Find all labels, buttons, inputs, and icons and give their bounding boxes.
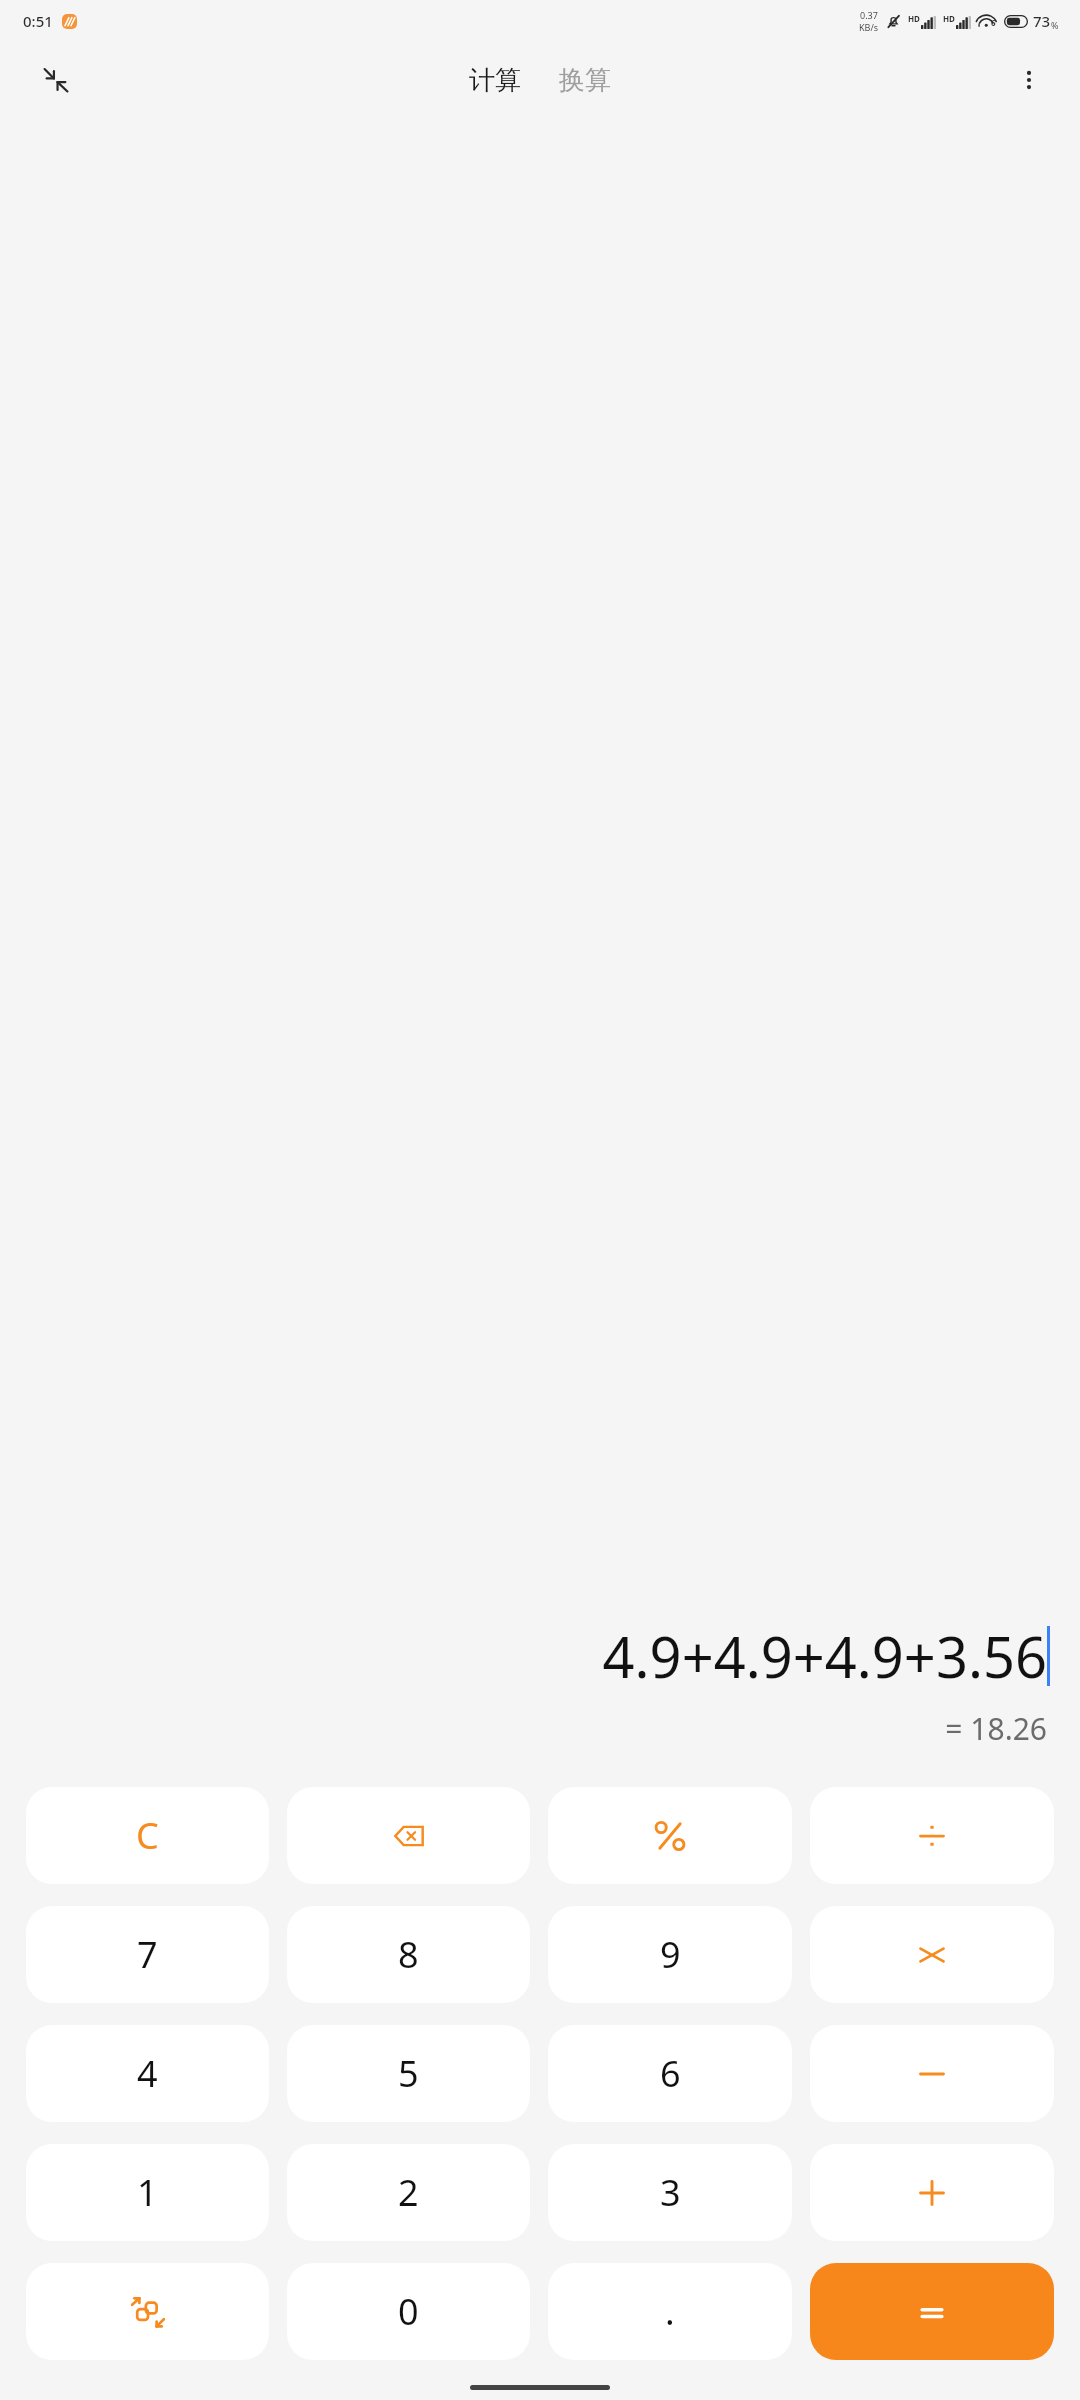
button[interactable]: 4 bbox=[26, 2025, 269, 2122]
button[interactable]: Backspace bbox=[287, 1787, 530, 1884]
button[interactable]: Clear bbox=[26, 1787, 269, 1884]
staticText: 73 bbox=[1033, 11, 1051, 31]
button[interactable]: More options bbox=[1004, 55, 1054, 105]
staticText: % bbox=[1051, 19, 1059, 31]
button[interactable]: 2 bbox=[287, 2144, 530, 2241]
button[interactable]: Divide bbox=[810, 1787, 1054, 1884]
staticText: 换算 bbox=[559, 64, 611, 97]
staticText: KB/s bbox=[859, 21, 879, 33]
staticText: 0:51 bbox=[23, 11, 53, 31]
staticText: 5 bbox=[398, 2049, 419, 2098]
staticText: 8 bbox=[398, 1930, 419, 1979]
staticText: 0.37 bbox=[860, 9, 878, 21]
staticText: 1 bbox=[137, 2168, 158, 2217]
staticText: C bbox=[136, 1811, 159, 1860]
button[interactable]: . bbox=[548, 2263, 792, 2360]
button[interactable]: 计算 bbox=[461, 60, 529, 101]
staticText: 4.9+4.9+4.9+3.56 bbox=[602, 1618, 1047, 1694]
button[interactable]: 9 bbox=[548, 1906, 792, 2003]
staticText: 6 bbox=[991, 17, 996, 28]
staticText: HD bbox=[943, 13, 955, 24]
button[interactable]: Minus bbox=[810, 2025, 1054, 2122]
button[interactable]: 3 bbox=[548, 2144, 792, 2241]
button[interactable]: Percent bbox=[548, 1787, 792, 1884]
staticText: 0 bbox=[398, 2287, 419, 2336]
staticText: 7 bbox=[137, 1930, 158, 1979]
button[interactable]: Plus bbox=[810, 2144, 1054, 2241]
staticText: = 18.26 bbox=[30, 1708, 1047, 1749]
button[interactable]: 换算 bbox=[551, 60, 619, 101]
button[interactable]: Multiply bbox=[810, 1906, 1054, 2003]
button[interactable]: Equals bbox=[810, 2263, 1054, 2360]
button[interactable]: 6 bbox=[548, 2025, 792, 2122]
button[interactable]: 0 bbox=[287, 2263, 530, 2360]
staticText: 3 bbox=[660, 2168, 681, 2217]
button[interactable]: 8 bbox=[287, 1906, 530, 2003]
staticText: 4 bbox=[137, 2049, 158, 2098]
button[interactable]: Scientific bbox=[26, 2263, 269, 2360]
staticText: 6 bbox=[660, 2049, 681, 2098]
staticText: 9 bbox=[660, 1930, 681, 1979]
button[interactable]: 5 bbox=[287, 2025, 530, 2122]
button[interactable]: 1 bbox=[26, 2144, 269, 2241]
button[interactable]: 7 bbox=[26, 1906, 269, 2003]
staticText: HD bbox=[908, 13, 920, 24]
button[interactable]: Collapse bbox=[30, 54, 82, 106]
staticText: 计算 bbox=[469, 64, 521, 97]
staticText: . bbox=[665, 2287, 675, 2336]
staticText: 2 bbox=[398, 2168, 419, 2217]
